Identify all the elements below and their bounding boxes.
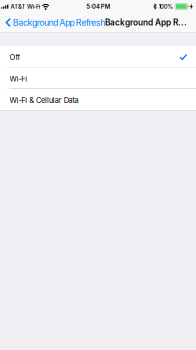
staticText: Background App R... (105, 17, 187, 27)
button[interactable]: Wi-Fi & Cellular Data (0, 89, 196, 110)
staticText: 100% (159, 3, 173, 10)
staticText: AT&T Wi-Fi (10, 3, 40, 10)
staticText: Background App Refresh (13, 17, 105, 28)
staticText: 5:04 PM (86, 3, 110, 10)
staticText: Wi-Fi (9, 74, 27, 83)
button[interactable]: Off (0, 46, 196, 67)
staticText: Wi-Fi & Cellular Data (9, 96, 78, 105)
button[interactable]: Back to Background App Refresh (0, 13, 105, 32)
staticText: Off (9, 53, 20, 62)
button[interactable]: Wi-Fi (0, 67, 196, 88)
